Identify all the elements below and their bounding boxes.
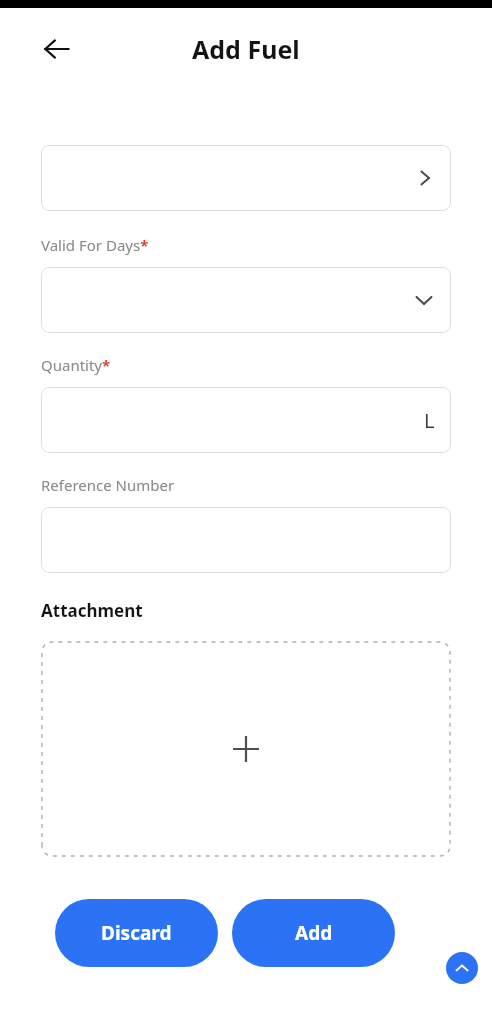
button[interactable]: L bbox=[41, 387, 451, 453]
button[interactable] bbox=[41, 267, 451, 333]
button[interactable]: Scroll to top bbox=[446, 952, 478, 984]
button[interactable]: Add bbox=[232, 899, 395, 967]
button[interactable]: Add attachment bbox=[41, 641, 451, 857]
staticText: Attachment bbox=[41, 599, 143, 622]
staticText: Reference Number bbox=[41, 475, 175, 495]
staticText: L bbox=[424, 407, 435, 434]
staticText: Discard bbox=[101, 920, 172, 946]
button[interactable] bbox=[41, 507, 451, 573]
staticText: Add bbox=[295, 920, 333, 946]
staticText: Valid For Days* bbox=[41, 235, 149, 255]
staticText: Quantity* bbox=[41, 355, 111, 375]
staticText: Add Fuel bbox=[192, 32, 300, 66]
button[interactable]: Back bbox=[33, 25, 81, 73]
button[interactable]: Discard bbox=[55, 899, 218, 967]
button[interactable] bbox=[41, 145, 451, 211]
